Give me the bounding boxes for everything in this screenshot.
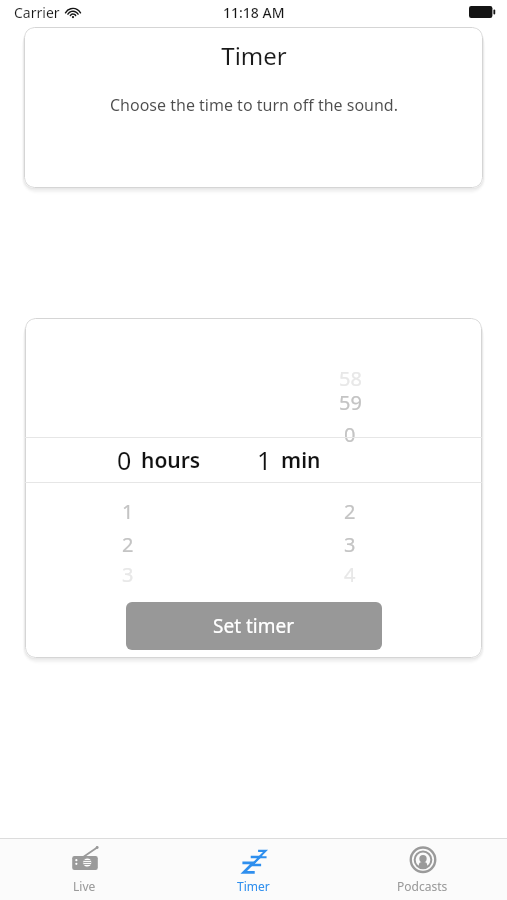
staticText: Set timer [213, 613, 295, 639]
staticText: Live [73, 878, 96, 894]
staticText: 1 [257, 443, 272, 477]
staticText: 3 [344, 531, 356, 558]
staticText: 3 [122, 561, 134, 588]
button[interactable]: Podcasts [338, 839, 507, 900]
button[interactable]: Timer [169, 839, 338, 900]
button[interactable]: 0 [117, 443, 201, 477]
staticText: 0 [344, 421, 356, 448]
staticText: Timer [221, 39, 287, 72]
staticText: 2 [344, 498, 356, 525]
staticText: 2 [122, 531, 134, 558]
staticText: Podcasts [397, 878, 448, 894]
staticText: 58 [339, 365, 362, 392]
staticText: 0 [117, 443, 132, 477]
button[interactable]: Set timer [126, 602, 382, 650]
staticText: Choose the time to turn off the sound. [110, 94, 398, 116]
button[interactable]: Live [0, 839, 169, 900]
staticText: 4 [344, 561, 356, 588]
staticText: 1 [122, 498, 134, 525]
staticText: min [281, 446, 321, 475]
staticText: 59 [339, 389, 362, 416]
staticText: Timer [237, 878, 270, 894]
staticText: hours [141, 446, 201, 475]
staticText: Carrier [14, 3, 60, 22]
button[interactable]: 1 [257, 443, 321, 477]
staticText: 11:18 AM [223, 3, 285, 22]
